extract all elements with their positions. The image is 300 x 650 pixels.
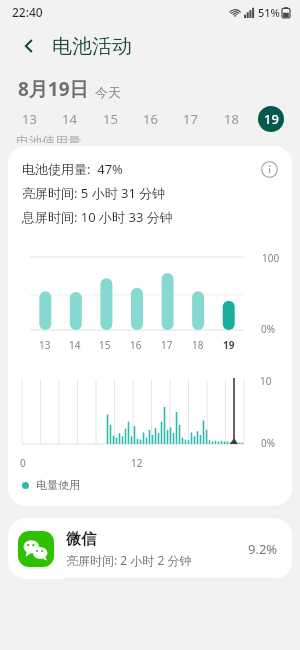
staticText: 息屏时间: 10 小时 33 分钟 (22, 208, 173, 226)
button[interactable]: 17 (177, 106, 203, 132)
staticText: 13 (39, 338, 51, 352)
staticText: 17 (183, 110, 198, 128)
staticText: 8月19日 (18, 76, 89, 102)
button[interactable]: 16 (137, 106, 163, 132)
staticText: 22:40 (12, 4, 43, 20)
button[interactable]: 微信 (8, 518, 292, 579)
staticText: 14 (69, 338, 81, 352)
staticText: 51% (258, 5, 280, 20)
button[interactable]: 13 (16, 106, 42, 132)
staticText: 电池活动 (52, 34, 132, 59)
staticText: 18 (192, 338, 204, 352)
staticText: 16 (143, 110, 158, 128)
staticText: 电量使用 (36, 478, 80, 492)
staticText: 15 (99, 338, 111, 352)
staticText: 0% (261, 322, 276, 336)
staticText: 亮屏时间: 2 小时 2 分钟 (66, 552, 192, 568)
staticText: 12 (131, 456, 143, 470)
staticText: 16 (130, 338, 142, 352)
staticText: 0% (261, 436, 276, 450)
staticText: 17 (161, 338, 173, 352)
staticText: 15 (103, 110, 118, 128)
staticText: 微信 (66, 530, 96, 549)
staticText: 电池使用量 (16, 133, 81, 143)
button[interactable]: 电池使用量: 47% (8, 146, 292, 506)
button[interactable]: Back (14, 31, 44, 61)
staticText: 10 (260, 374, 272, 388)
button[interactable]: Info (256, 156, 282, 182)
staticText: 9.2% (248, 540, 278, 558)
staticText: 13 (22, 110, 37, 128)
button[interactable]: 19 (258, 106, 284, 132)
staticText: 0 (20, 456, 26, 470)
staticText: 今天 (95, 84, 121, 100)
staticText: 电池使用量: 47% (22, 160, 123, 178)
staticText: 18 (224, 110, 239, 128)
staticText: 100 (262, 251, 280, 265)
staticText: 14 (62, 110, 77, 128)
button[interactable]: 18 (218, 106, 244, 132)
staticText: 19 (264, 110, 279, 128)
staticText: 19 (223, 338, 235, 352)
staticText: 亮屏时间: 5 小时 31 分钟 (22, 184, 166, 202)
button[interactable]: 14 (56, 106, 82, 132)
button[interactable]: 15 (97, 106, 123, 132)
